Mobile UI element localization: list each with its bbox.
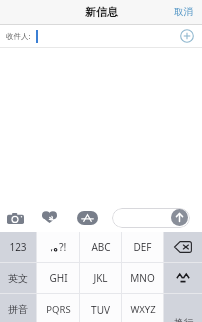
- button[interactable]: Send: [171, 209, 188, 226]
- staticText: 取消: [174, 6, 193, 18]
- button[interactable]: GHI: [37, 263, 79, 293]
- button[interactable]: Apps: [76, 207, 98, 228]
- button[interactable]: MNO: [122, 263, 163, 293]
- staticText: 换行: [174, 317, 193, 322]
- button[interactable]: [112, 208, 190, 228]
- other: Delete: [174, 241, 192, 253]
- button[interactable]: PQRS: [37, 294, 79, 322]
- button[interactable]: WXYZ: [122, 294, 163, 322]
- staticText: 123: [9, 240, 27, 254]
- button[interactable]: Add contact: [180, 29, 194, 43]
- staticText: 新信息: [85, 5, 118, 19]
- button[interactable]: 取消: [165, 0, 202, 24]
- button[interactable]: ?!: [37, 232, 79, 262]
- staticText: GHI: [49, 271, 68, 285]
- button[interactable]: Digital Touch: [39, 207, 60, 228]
- other: Emoji: [174, 272, 192, 284]
- staticText: MNO: [130, 271, 155, 285]
- staticText: TUV: [91, 303, 110, 317]
- staticText: ?!: [59, 240, 67, 254]
- button[interactable]: 换行: [164, 294, 202, 322]
- button[interactable]: 123: [0, 232, 36, 262]
- button[interactable]: 英文: [0, 263, 36, 293]
- staticText: 拼音: [8, 303, 28, 316]
- staticText: JKL: [93, 271, 108, 285]
- staticText: ABC: [91, 240, 111, 254]
- staticText: 收件人:: [6, 31, 31, 41]
- button[interactable]: 拼音: [0, 294, 36, 322]
- button[interactable]: JKL: [80, 263, 121, 293]
- button[interactable]: DEF: [122, 232, 163, 262]
- button[interactable]: Delete: [164, 232, 202, 262]
- button[interactable]: Camera: [5, 207, 26, 228]
- staticText: WXYZ: [130, 303, 156, 316]
- button[interactable]: Emoji: [164, 263, 202, 293]
- staticText: 英文: [8, 272, 28, 285]
- staticText: DEF: [133, 240, 152, 254]
- staticText: PQRS: [46, 303, 71, 316]
- button[interactable]: ABC: [80, 232, 121, 262]
- button[interactable]: TUV: [80, 294, 121, 322]
